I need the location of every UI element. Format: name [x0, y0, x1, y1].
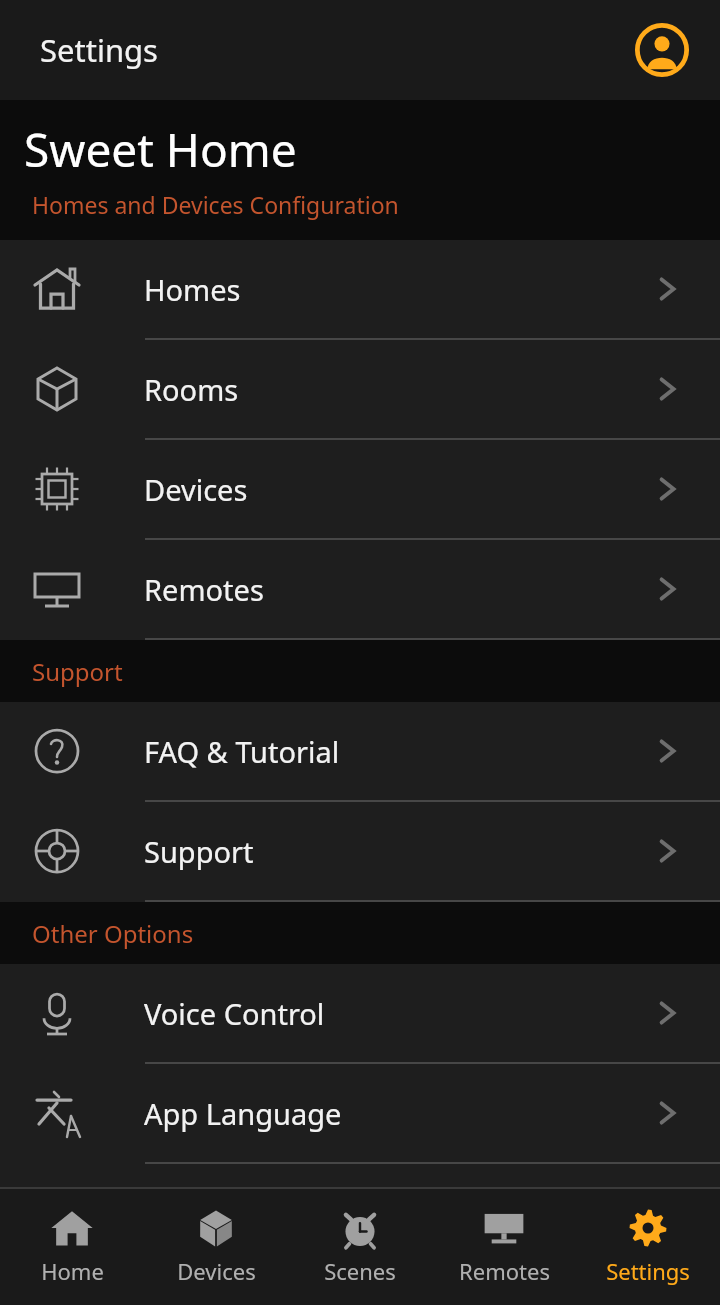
staticText: Support — [144, 832, 652, 871]
staticText: App Language — [144, 1094, 652, 1133]
button[interactable]: FAQ & Tutorial — [0, 702, 720, 802]
staticText: Sweet Home — [24, 118, 297, 181]
button[interactable]: Scenes — [288, 1187, 432, 1305]
button[interactable]: Remotes — [0, 540, 720, 640]
button[interactable]: Devices — [0, 440, 720, 540]
staticText: Devices — [144, 470, 652, 509]
button[interactable]: Settings — [576, 1187, 720, 1305]
button[interactable]: Support — [0, 802, 720, 902]
staticText: Remotes — [459, 1256, 550, 1286]
staticText: Voice Control — [144, 994, 652, 1033]
button[interactable]: Devices — [144, 1187, 288, 1305]
button[interactable]: Rooms — [0, 340, 720, 440]
staticText: Other Options — [32, 917, 194, 950]
staticText: Settings — [606, 1256, 690, 1286]
staticText: Rooms — [144, 370, 652, 409]
staticText: Home — [41, 1256, 104, 1286]
staticText: Settings — [40, 29, 158, 71]
button[interactable]: Home — [0, 1187, 144, 1305]
staticText: FAQ & Tutorial — [144, 732, 652, 771]
staticText: Remotes — [144, 570, 652, 609]
button[interactable]: Account — [634, 22, 690, 78]
button[interactable]: Homes — [0, 240, 720, 340]
button[interactable]: Remotes — [432, 1187, 576, 1305]
staticText: Scenes — [324, 1256, 396, 1286]
button[interactable]: App Language — [0, 1064, 720, 1164]
staticText: Homes — [144, 270, 652, 309]
staticText: Homes and Devices Configuration — [32, 189, 399, 220]
button[interactable]: Voice Control — [0, 964, 720, 1064]
staticText: Support — [32, 655, 123, 688]
staticText: Devices — [177, 1256, 256, 1286]
